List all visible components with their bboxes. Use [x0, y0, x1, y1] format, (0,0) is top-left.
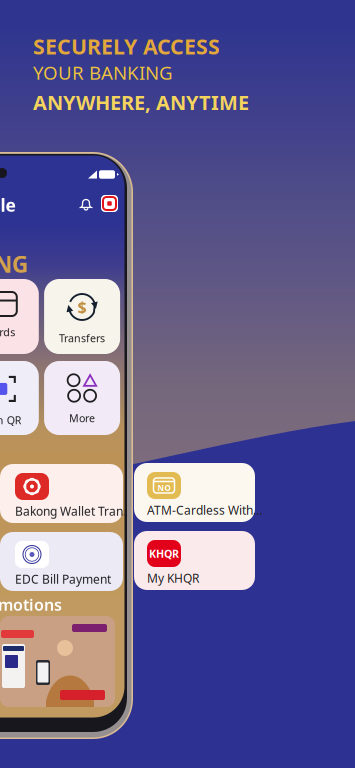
staticText: Promotions [0, 594, 62, 615]
staticText: Bakong Wallet Tran… [15, 503, 132, 519]
button[interactable]: Scan QR [0, 361, 39, 435]
button[interactable]: EDC Bill Payment [0, 532, 123, 591]
button[interactable] [0, 616, 115, 707]
staticText: ATM-Cardless With… [147, 502, 262, 518]
staticText: Scan QR [0, 413, 22, 427]
staticText: Cards [0, 325, 15, 339]
staticText: My KHQR [147, 570, 199, 586]
button[interactable]: NO [134, 463, 255, 522]
staticText: Mobile [0, 193, 15, 216]
button[interactable]: Scan QR code [99, 193, 120, 214]
staticText: EDC Bill Payment [15, 571, 111, 587]
staticText: BANKING [0, 249, 28, 279]
staticText: SECURELY ACCESS [33, 32, 220, 60]
button[interactable]: Notifications [76, 194, 96, 214]
button[interactable]: $ [44, 279, 120, 354]
button[interactable]: KHQR [134, 531, 255, 590]
staticText: $ [78, 296, 87, 318]
staticText: ANYWHERE, ANYTIME [33, 89, 249, 116]
staticText: More [69, 411, 95, 425]
staticText: Transfers [59, 331, 105, 345]
staticText: NO [157, 483, 170, 493]
button[interactable]: Cards [0, 279, 39, 354]
staticText: YOUR BANKING [33, 60, 173, 85]
button[interactable]: More [44, 361, 120, 435]
staticText: KHQR [149, 546, 179, 561]
button[interactable]: Bakong Wallet Tran… [0, 464, 123, 523]
